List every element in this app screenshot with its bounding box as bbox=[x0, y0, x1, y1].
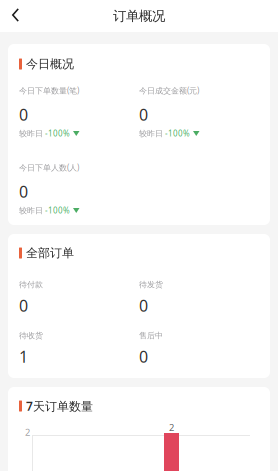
staticText: 0 bbox=[139, 295, 148, 316]
staticText: 7天订单数量 bbox=[26, 398, 93, 414]
staticText: 售后中 bbox=[139, 331, 163, 340]
staticText: 全部订单 bbox=[26, 246, 74, 260]
button[interactable]: 待发货 bbox=[139, 278, 259, 311]
staticText: 今日成交金额(元) bbox=[139, 85, 199, 96]
staticText: 2 bbox=[169, 421, 174, 434]
staticText: 较昨日 bbox=[19, 206, 45, 215]
button[interactable]: 售后中 bbox=[139, 329, 259, 362]
staticText: 今日下单数量(笔) bbox=[19, 85, 79, 96]
staticText: 0 bbox=[139, 346, 148, 367]
staticText: 2 bbox=[25, 426, 30, 438]
staticText: 待付款 bbox=[19, 280, 43, 289]
staticText: 0 bbox=[19, 181, 28, 202]
button[interactable]: 待付款 bbox=[19, 278, 139, 311]
staticText: 0 bbox=[139, 104, 148, 125]
staticText: 较昨日 bbox=[19, 129, 45, 138]
staticText: -100% bbox=[45, 128, 70, 139]
staticText: 0 bbox=[19, 104, 28, 125]
button[interactable]: 待收货 bbox=[19, 329, 139, 362]
staticText: 今日概况 bbox=[26, 57, 74, 71]
staticText: -100% bbox=[45, 205, 70, 216]
staticText: 较昨日 bbox=[139, 129, 165, 138]
staticText: 今日下单人数(人) bbox=[19, 162, 79, 173]
staticText: 1 bbox=[19, 346, 28, 367]
staticText: 待收货 bbox=[19, 331, 43, 340]
staticText: 待发货 bbox=[139, 280, 163, 289]
button[interactable]: Back bbox=[0, 3, 31, 29]
staticText: 0 bbox=[19, 295, 28, 316]
staticText: 订单概况 bbox=[113, 8, 165, 24]
staticText: -100% bbox=[165, 128, 190, 139]
